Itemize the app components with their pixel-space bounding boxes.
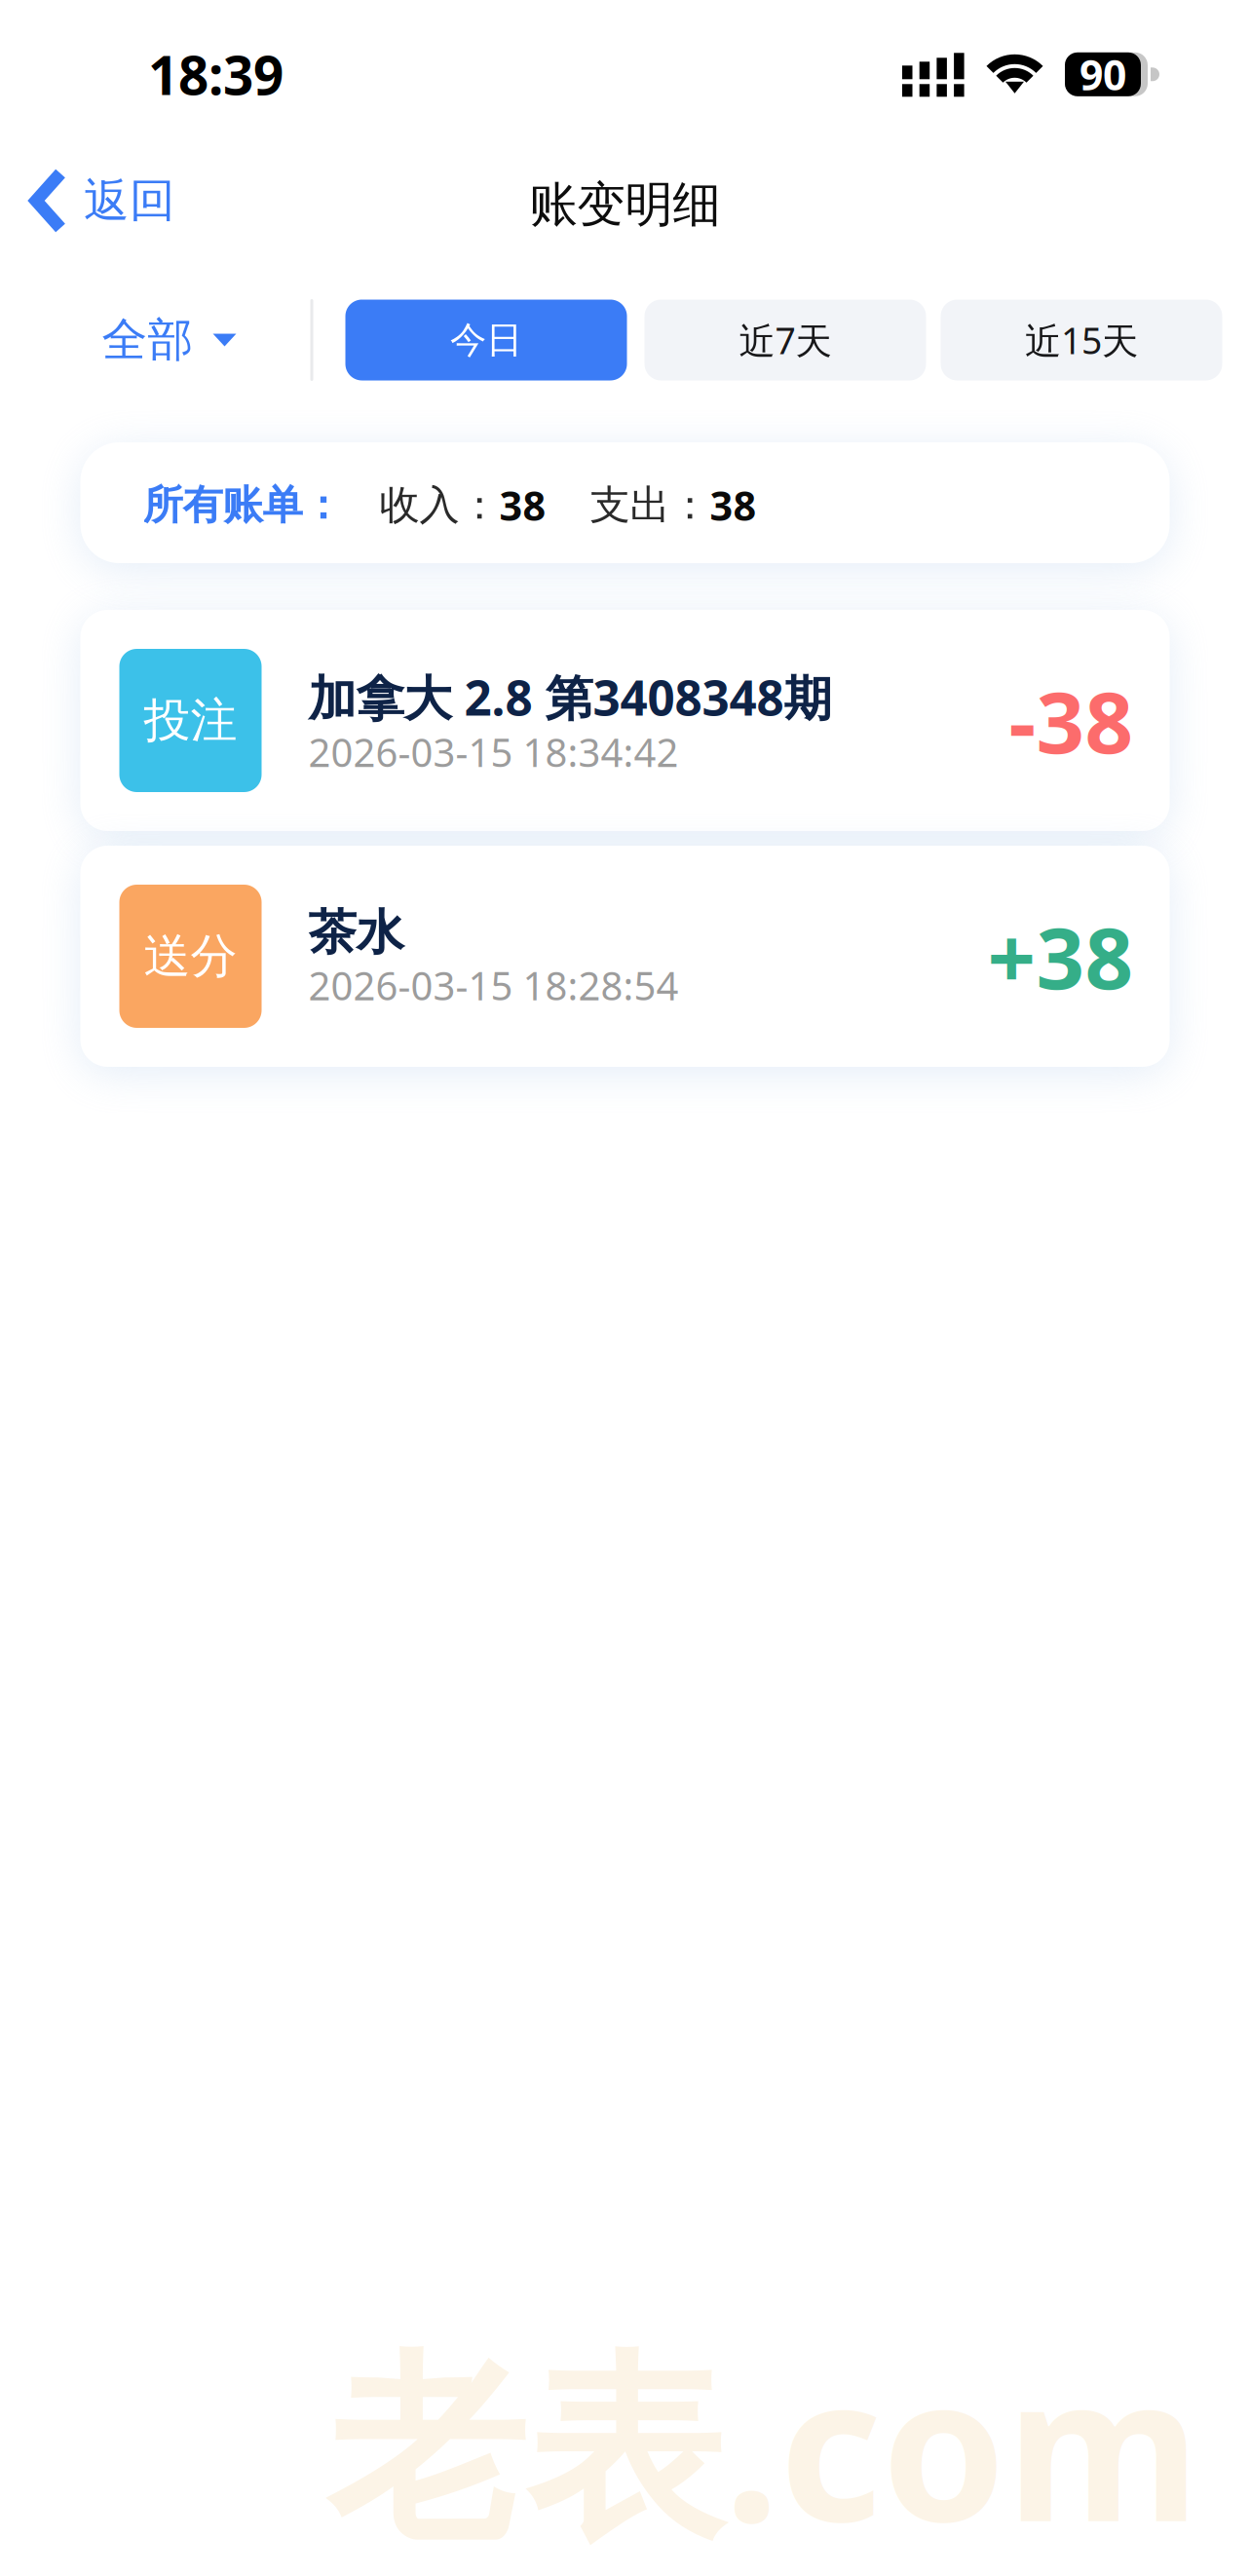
button[interactable]: 近15天	[941, 300, 1222, 380]
staticText: 所有账单：	[143, 480, 342, 530]
button[interactable]: 近7天	[644, 300, 926, 380]
staticText: 收入：	[379, 480, 499, 530]
staticText: 老表.com	[326, 2312, 1200, 2576]
staticText: 90	[1080, 47, 1126, 102]
staticText: 支出：	[590, 480, 710, 530]
button[interactable]: 送分	[80, 846, 1170, 1067]
button[interactable]: 全部	[0, 270, 310, 410]
staticText: 投注	[144, 692, 237, 749]
staticText: 近7天	[739, 316, 832, 364]
staticText: +38	[987, 900, 1134, 1012]
staticText: 全部	[102, 312, 193, 368]
staticText: 38	[499, 478, 546, 532]
staticText: -38	[1009, 664, 1134, 777]
staticText: 2026-03-15 18:34:42	[308, 726, 679, 778]
staticText: 送分	[144, 928, 237, 985]
button[interactable]: 投注	[80, 610, 1170, 831]
staticText: 18:39	[148, 39, 284, 110]
button[interactable]: 今日	[345, 300, 627, 380]
staticText: 加拿大 2.8 第3408348期	[308, 665, 832, 729]
staticText: 返回	[84, 173, 175, 229]
staticText: 2026-03-15 18:28:54	[308, 959, 679, 1011]
staticText: 近15天	[1025, 316, 1138, 364]
staticText: 今日	[450, 318, 522, 362]
staticText: 茶水	[308, 903, 404, 962]
staticText: 账变明细	[530, 175, 720, 234]
staticText: 38	[710, 478, 757, 532]
button[interactable]: 返回	[0, 147, 205, 254]
